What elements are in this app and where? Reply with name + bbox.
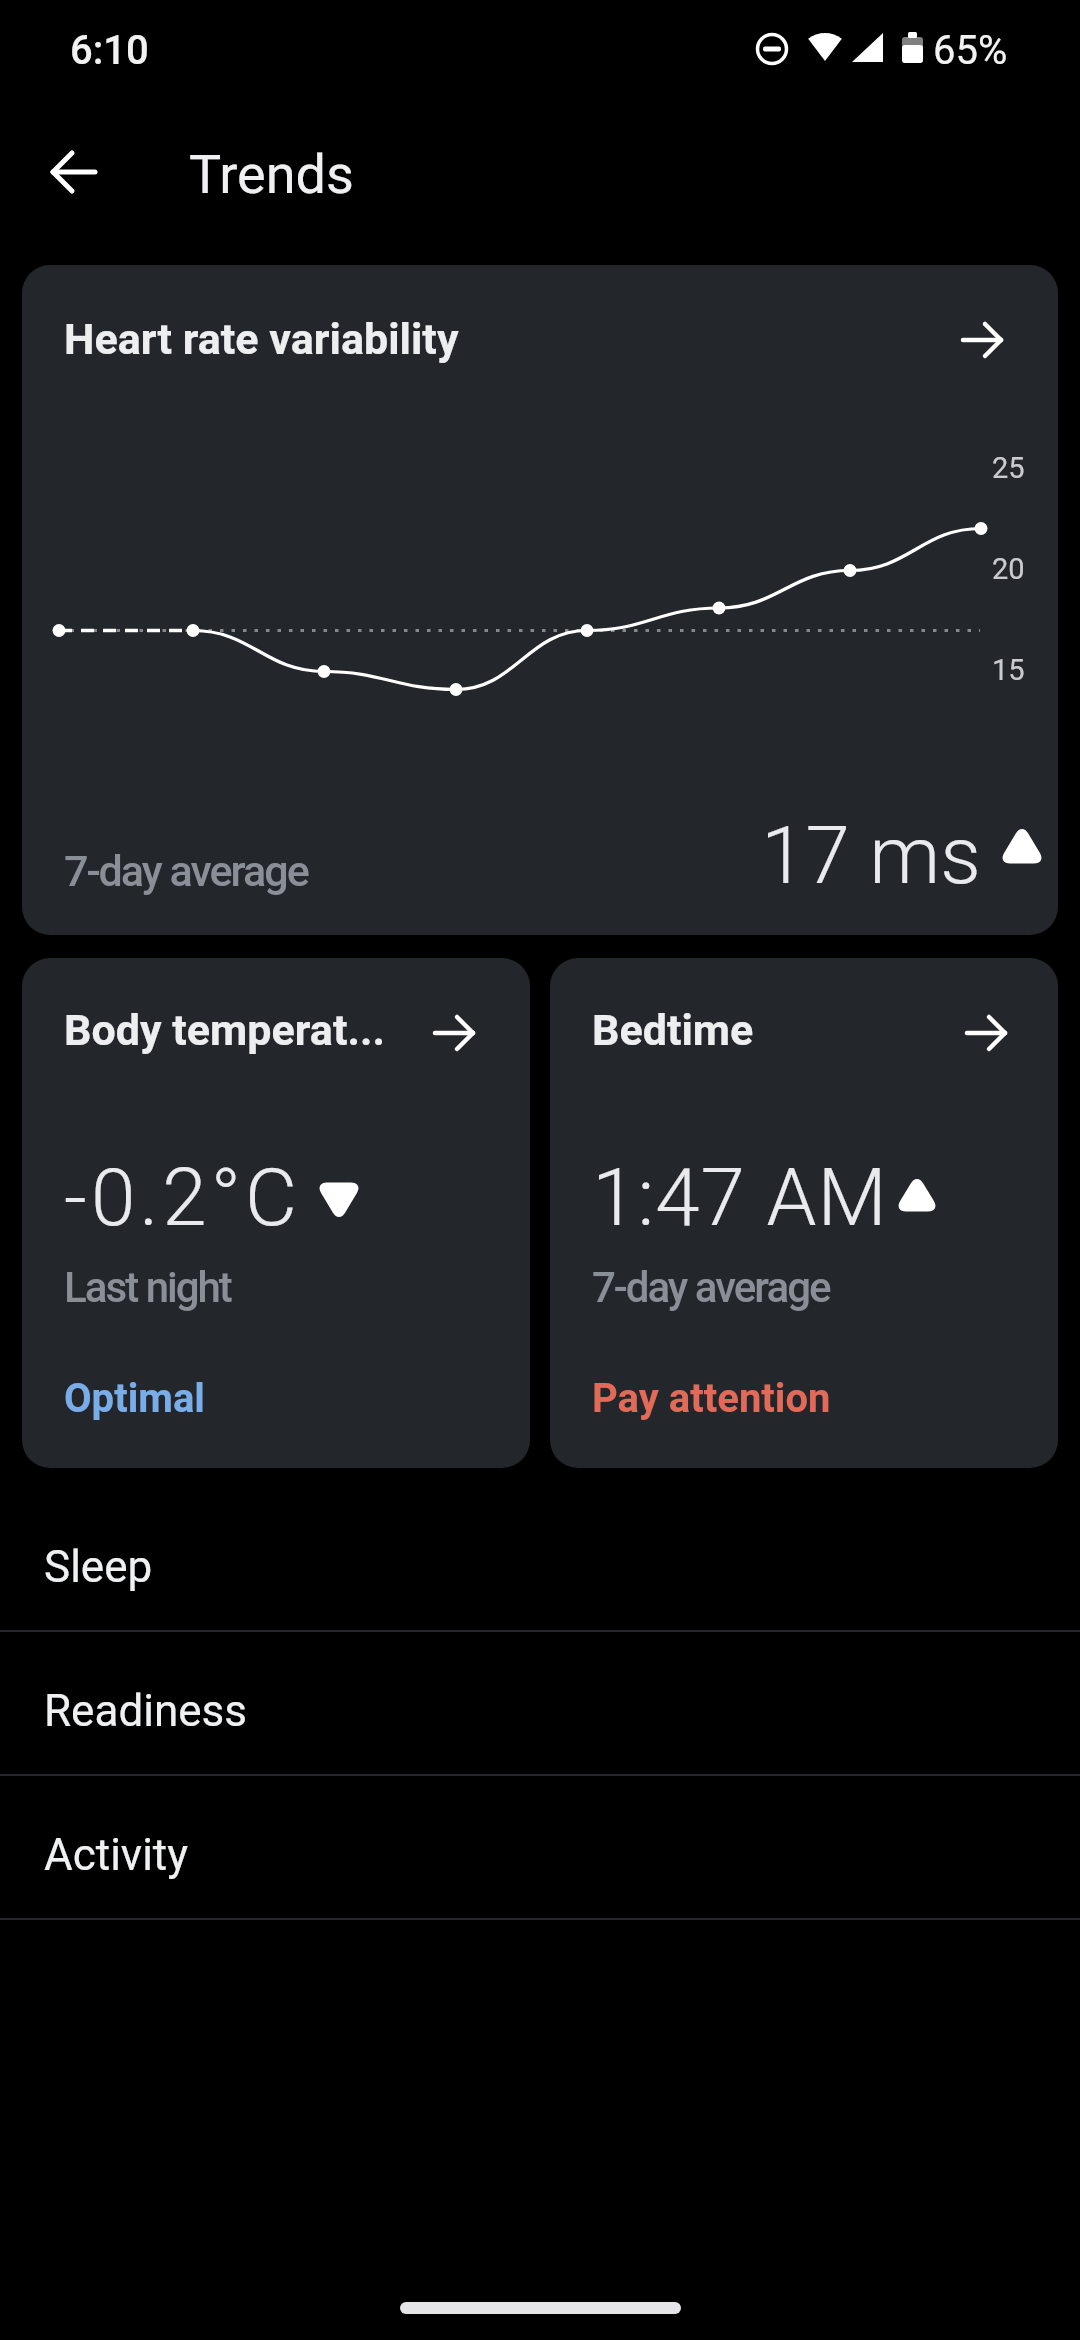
staticText: Body temperat... [64,1005,385,1055]
button[interactable] [36,136,112,208]
staticText: 15 [992,653,1025,687]
button[interactable]: Heart rate variability [22,265,1058,935]
staticText: Optimal [64,1375,205,1422]
staticText: 7-day average [592,1263,830,1312]
staticText: -0.2°C [64,1151,301,1245]
staticText: 6:10 [70,27,149,74]
staticText: 17 ms [761,809,981,903]
staticText: Sleep [44,1541,153,1593]
staticText: Readiness [44,1685,247,1737]
staticText: Last night [64,1263,231,1312]
staticText: 1:47 AM [592,1151,888,1245]
staticText: 65% [933,27,1008,74]
button[interactable] [0,1632,1080,1776]
staticText: 7-day average [64,846,308,896]
staticText: 25 [992,451,1025,485]
button[interactable] [0,1486,1080,1630]
staticText: Trends [189,143,354,206]
button[interactable]: Bedtime [550,958,1058,1468]
staticText: Pay attention [592,1375,831,1422]
button[interactable] [0,1776,1080,1920]
staticText: 20 [992,552,1025,586]
staticText: Bedtime [592,1005,754,1055]
button[interactable]: Body temperat... [22,958,530,1468]
staticText: Activity [44,1829,189,1881]
staticText: Heart rate variability [64,314,459,364]
